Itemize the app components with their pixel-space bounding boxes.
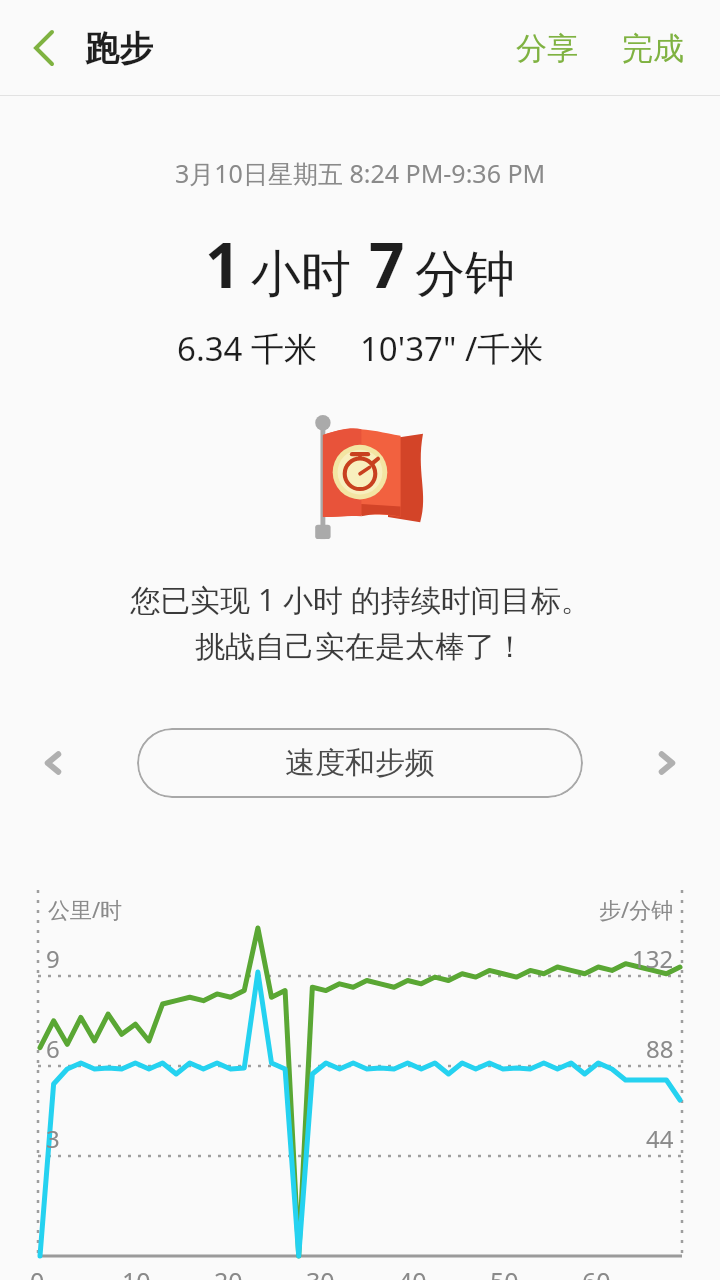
- staticText: 小时: [251, 243, 351, 306]
- staticText: 50: [490, 1264, 519, 1280]
- button[interactable]: 速度和步频: [137, 728, 583, 798]
- staticText: 0: [30, 1264, 45, 1280]
- staticText: 6.34 千米 10'37" /千米: [177, 326, 544, 371]
- staticText: 7: [369, 222, 405, 306]
- staticText: 3: [46, 1122, 60, 1155]
- staticText: 10: [122, 1264, 151, 1280]
- staticText: 132: [632, 942, 674, 975]
- staticText: 30: [306, 1264, 335, 1280]
- staticText: 1: [205, 222, 241, 306]
- staticText: 跑步: [85, 27, 153, 70]
- button[interactable]: Previous chart: [20, 730, 86, 796]
- staticText: 6: [46, 1032, 60, 1065]
- staticText: 44: [646, 1122, 674, 1155]
- staticText: 步/分钟: [599, 894, 674, 924]
- button[interactable]: 完成: [608, 19, 698, 78]
- staticText: 20: [214, 1264, 243, 1280]
- staticText: 9: [46, 942, 60, 975]
- staticText: 分享: [516, 29, 578, 68]
- staticText: 您已实现 1 小时 的持续时间目标。: [130, 579, 591, 620]
- staticText: 速度和步频: [285, 744, 435, 782]
- staticText: 挑战自己实在是太棒了！: [195, 628, 525, 666]
- staticText: 60: [582, 1264, 611, 1280]
- staticText: 40: [398, 1264, 427, 1280]
- staticText: 分钟: [415, 243, 515, 306]
- staticText: 公里/时: [48, 894, 123, 924]
- button[interactable]: Next chart: [634, 730, 700, 796]
- button[interactable]: Back: [14, 18, 74, 78]
- staticText: 3月10日星期五 8:24 PM-9:36 PM: [175, 156, 546, 190]
- staticText: 88: [646, 1032, 674, 1065]
- staticText: 完成: [622, 29, 684, 68]
- button[interactable]: 分享: [502, 19, 592, 78]
